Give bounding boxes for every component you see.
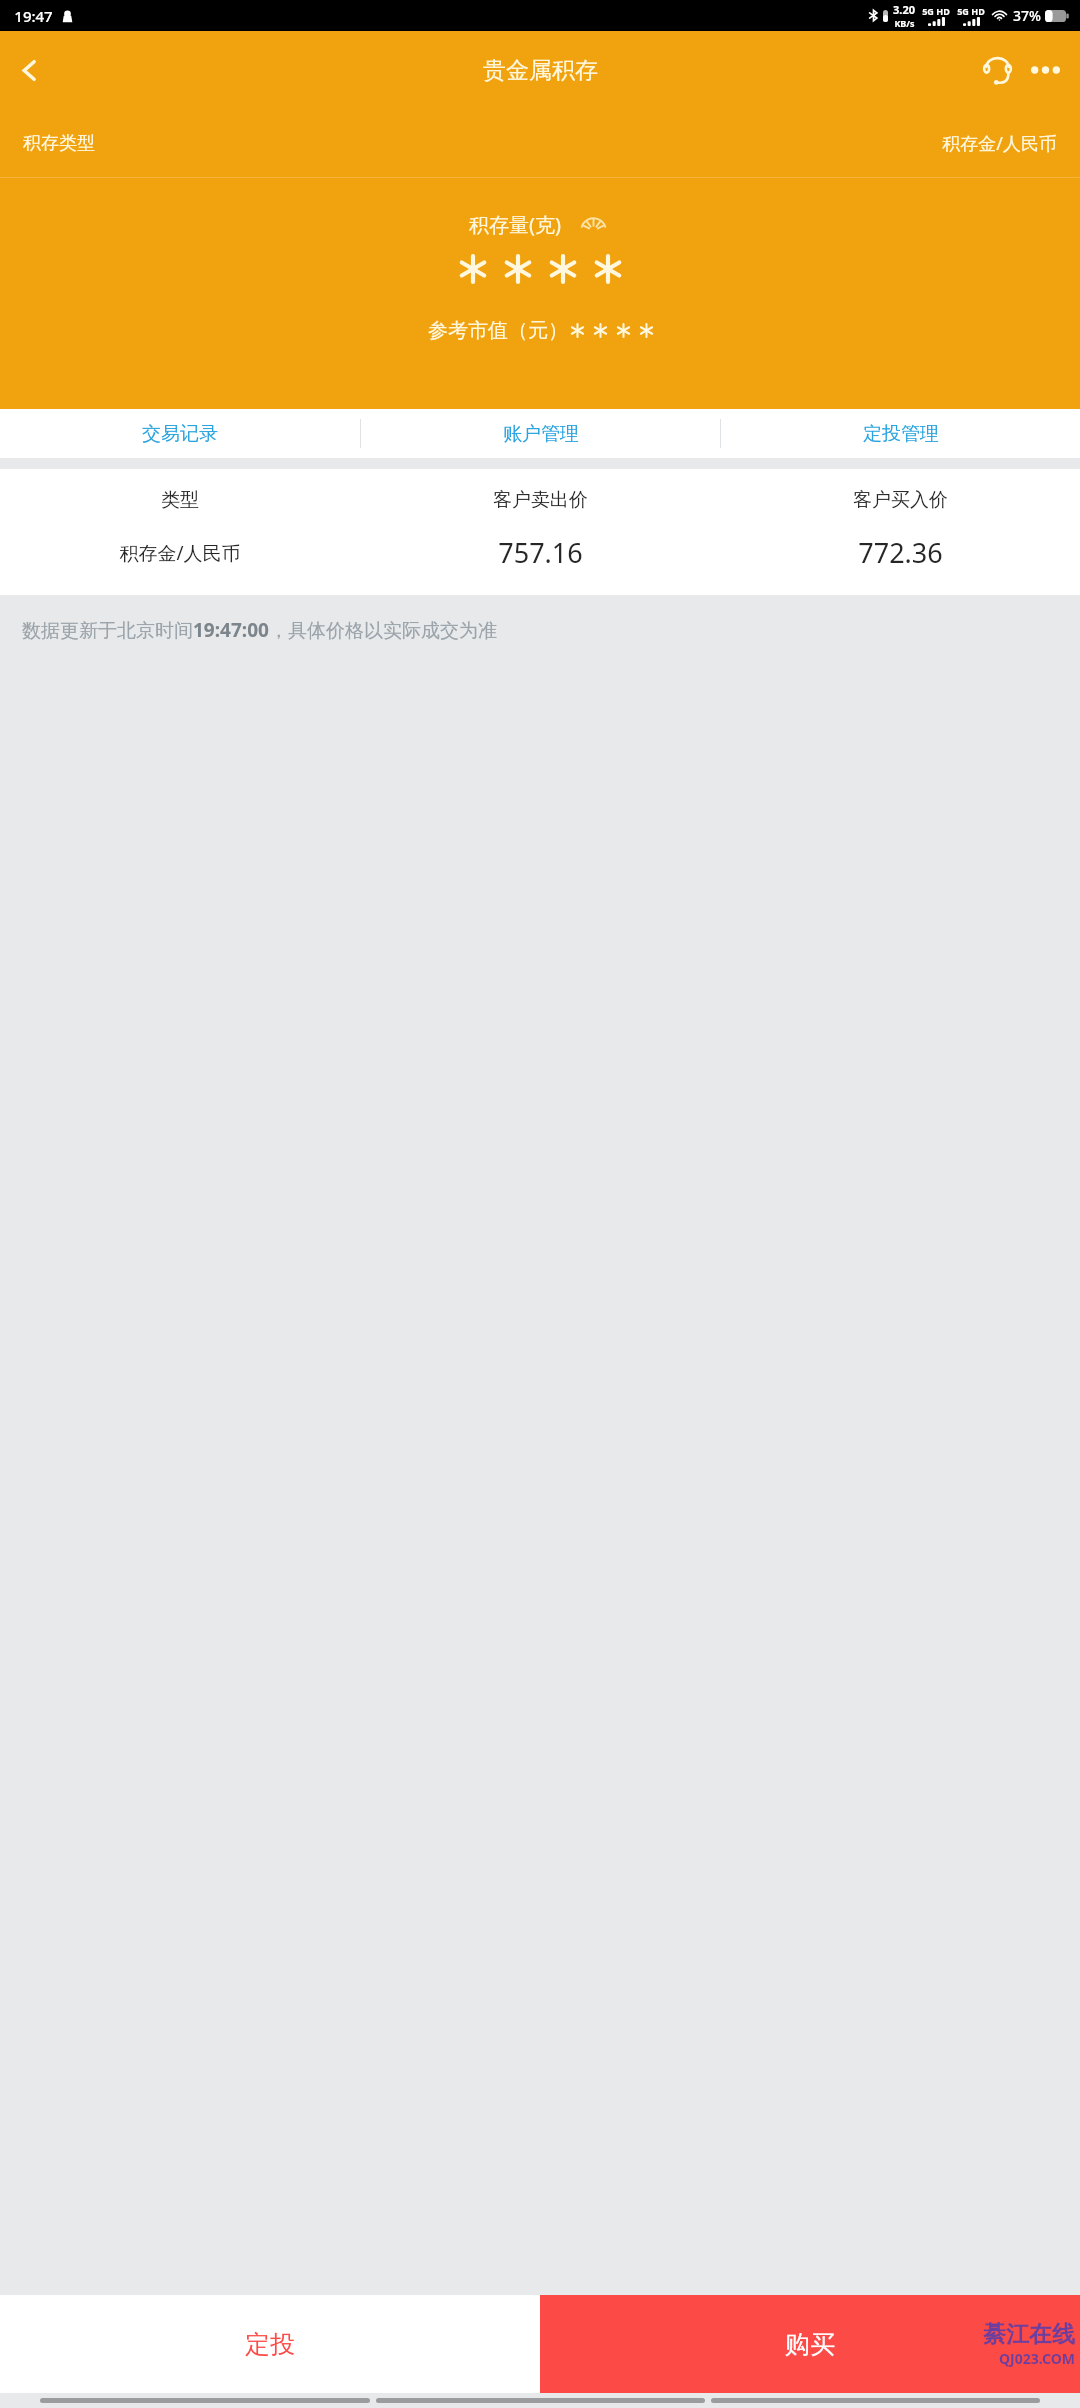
staticText: 19:47: [14, 6, 53, 26]
staticText: 37%: [1013, 6, 1041, 25]
staticText: 定投: [245, 2329, 295, 2360]
staticText: 购买: [785, 2329, 835, 2360]
staticText: 客户买入价: [853, 488, 948, 512]
staticText: HD: [971, 5, 985, 17]
staticText: 积存量(克): [469, 211, 561, 238]
staticText: 交易记录: [142, 422, 218, 446]
button[interactable]: 交易记录: [0, 409, 360, 458]
button[interactable]: More options: [1022, 47, 1068, 93]
staticText: 积存类型: [23, 132, 95, 155]
staticText: 3.20: [893, 2, 915, 17]
button[interactable]: Back: [0, 41, 58, 99]
staticText: 贵金属积存: [483, 56, 598, 85]
button[interactable]: 定投管理: [721, 409, 1080, 458]
staticText: KB/s: [894, 17, 915, 29]
button[interactable]: 定投: [0, 2295, 540, 2393]
staticText: 客户卖出价: [493, 488, 588, 512]
staticText: 账户管理: [503, 422, 579, 446]
staticText: 5G: [957, 5, 969, 17]
staticText: 参考市值（元）: [428, 318, 568, 343]
staticText: 定投管理: [863, 422, 939, 446]
button[interactable]: 积存类型: [0, 109, 1080, 177]
staticText: 757.16: [498, 534, 583, 571]
button[interactable]: Customer service: [972, 45, 1022, 95]
staticText: 积存金/人民币: [942, 131, 1057, 156]
staticText: 772.36: [858, 534, 943, 571]
button[interactable]: 账户管理: [361, 409, 720, 458]
staticText: 数据更新于北京时间19:47:00，具体价格以实际成交为准: [22, 617, 497, 643]
staticText: 类型: [161, 488, 199, 512]
staticText: 5G: [922, 5, 934, 17]
button[interactable]: 购买: [540, 2295, 1080, 2393]
staticText: QJ023.COM: [999, 2349, 1075, 2368]
staticText: HD: [936, 5, 950, 17]
button[interactable]: Toggle balance visibility: [575, 206, 611, 242]
staticText: 积存金/人民币: [119, 540, 241, 566]
staticText: 綦江在线: [983, 2320, 1075, 2349]
